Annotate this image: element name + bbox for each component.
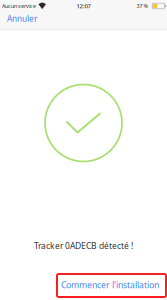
- staticText: 12:07: [76, 2, 90, 10]
- button[interactable]: Commencer l'installation: [56, 273, 166, 300]
- staticText: Commencer l'installation: [61, 279, 159, 291]
- staticText: Tracker 0ADECB détecté !: [34, 240, 133, 251]
- staticText: Aucun service: [2, 2, 36, 10]
- staticText: Annuler: [7, 13, 37, 24]
- staticText: 37 %: [136, 2, 148, 10]
- button[interactable]: Annuler: [0, 12, 44, 30]
